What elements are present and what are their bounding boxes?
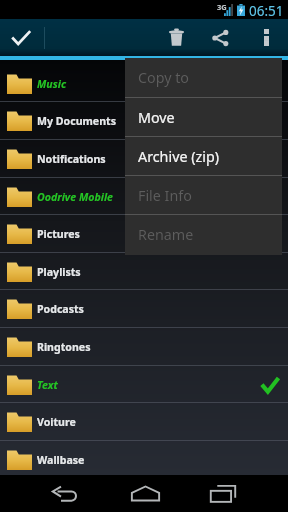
button[interactable]: Done <box>0 19 44 56</box>
staticText: 06:51 <box>249 2 284 20</box>
button[interactable]: Recent apps <box>191 475 255 512</box>
button[interactable]: Podcasts <box>0 290 288 328</box>
button[interactable]: Home <box>113 475 177 512</box>
staticText: Wallbase <box>37 453 85 467</box>
button[interactable]: Voiture <box>0 403 288 441</box>
button[interactable]: My Documents <box>0 102 288 140</box>
button[interactable]: File Info <box>125 176 282 214</box>
staticText: Pictures <box>37 227 80 241</box>
staticText: Move <box>138 108 175 127</box>
button[interactable]: Move <box>125 98 282 136</box>
button[interactable]: Text <box>0 366 288 404</box>
button[interactable]: Rename <box>125 215 282 253</box>
staticText: Playlists <box>37 265 81 279</box>
button[interactable]: Playlists <box>0 253 288 291</box>
staticText: Archive (zip) <box>138 147 219 166</box>
staticText: Text <box>37 378 58 392</box>
staticText: Ringtones <box>37 340 91 354</box>
staticText: Voiture <box>37 415 76 429</box>
staticText: Notifications <box>37 152 106 166</box>
staticText: File Info <box>138 186 192 205</box>
button[interactable]: Share <box>199 19 241 56</box>
button[interactable]: Oodrive Mobile <box>0 178 288 216</box>
button[interactable]: Copy to <box>125 58 282 97</box>
button[interactable]: More options <box>245 19 287 56</box>
button[interactable]: Back <box>32 475 96 512</box>
button[interactable]: Wallbase <box>0 441 288 479</box>
button[interactable]: Pictures <box>0 215 288 253</box>
staticText: Music <box>37 77 67 91</box>
staticText: Oodrive Mobile <box>37 190 114 204</box>
button[interactable]: Ringtones <box>0 328 288 366</box>
staticText: My Documents <box>37 114 116 128</box>
button[interactable]: Delete <box>155 19 197 56</box>
button[interactable]: Archive (zip) <box>125 137 282 175</box>
staticText: 3G <box>217 2 227 12</box>
staticText: Rename <box>138 225 194 244</box>
staticText: Podcasts <box>37 302 84 316</box>
button[interactable]: Notifications <box>0 140 288 178</box>
button[interactable]: Music <box>0 65 288 103</box>
staticText: Copy to <box>138 68 190 87</box>
